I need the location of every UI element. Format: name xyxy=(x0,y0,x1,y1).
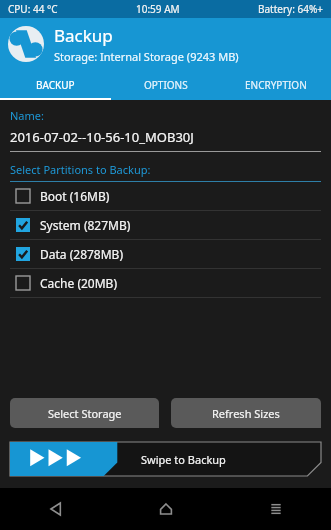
button[interactable]: Refresh Sizes xyxy=(171,398,321,428)
staticText: 2016-07-02--10-56-10_MOB30J xyxy=(10,128,194,146)
staticText: Boot (16MB) xyxy=(40,188,110,204)
staticText: OPTIONS xyxy=(144,78,188,92)
button[interactable]: Boot (16MB) xyxy=(10,182,321,211)
staticText: Select Partitions to Backup: xyxy=(10,162,151,177)
staticText: System (827MB) xyxy=(40,217,131,233)
staticText: CPU: 44 °C xyxy=(8,2,58,16)
button[interactable]: Cache (20MB) xyxy=(10,269,321,298)
staticText: Battery: 64%+ xyxy=(258,2,323,16)
staticText: Storage: Internal Storage (9243 MB) xyxy=(54,49,239,64)
button[interactable]: Data (2878MB) xyxy=(10,240,321,269)
staticText: Refresh Sizes xyxy=(212,406,280,421)
staticText: BACKUP xyxy=(36,78,75,92)
button[interactable]: Back xyxy=(0,488,111,530)
staticText: Name: xyxy=(10,108,44,123)
staticText: Select Storage xyxy=(48,406,122,421)
button[interactable]: OPTIONS xyxy=(111,70,221,100)
button[interactable]: System (827MB) xyxy=(10,211,321,240)
button[interactable]: Swipe to Backup xyxy=(10,442,321,476)
staticText: ENCRYPTION xyxy=(245,78,307,92)
staticText: Backup xyxy=(54,24,113,47)
button[interactable]: Menu xyxy=(221,488,331,530)
button[interactable]: Home xyxy=(111,488,221,530)
button[interactable]: BACKUP xyxy=(0,70,111,100)
staticText: Swipe to Backup xyxy=(141,452,226,467)
button[interactable]: Select Storage xyxy=(10,398,159,428)
staticText: Data (2878MB) xyxy=(40,246,124,262)
staticText: Cache (20MB) xyxy=(40,275,117,291)
button[interactable]: ENCRYPTION xyxy=(221,70,331,100)
staticText: 10:59 AM xyxy=(136,2,180,16)
